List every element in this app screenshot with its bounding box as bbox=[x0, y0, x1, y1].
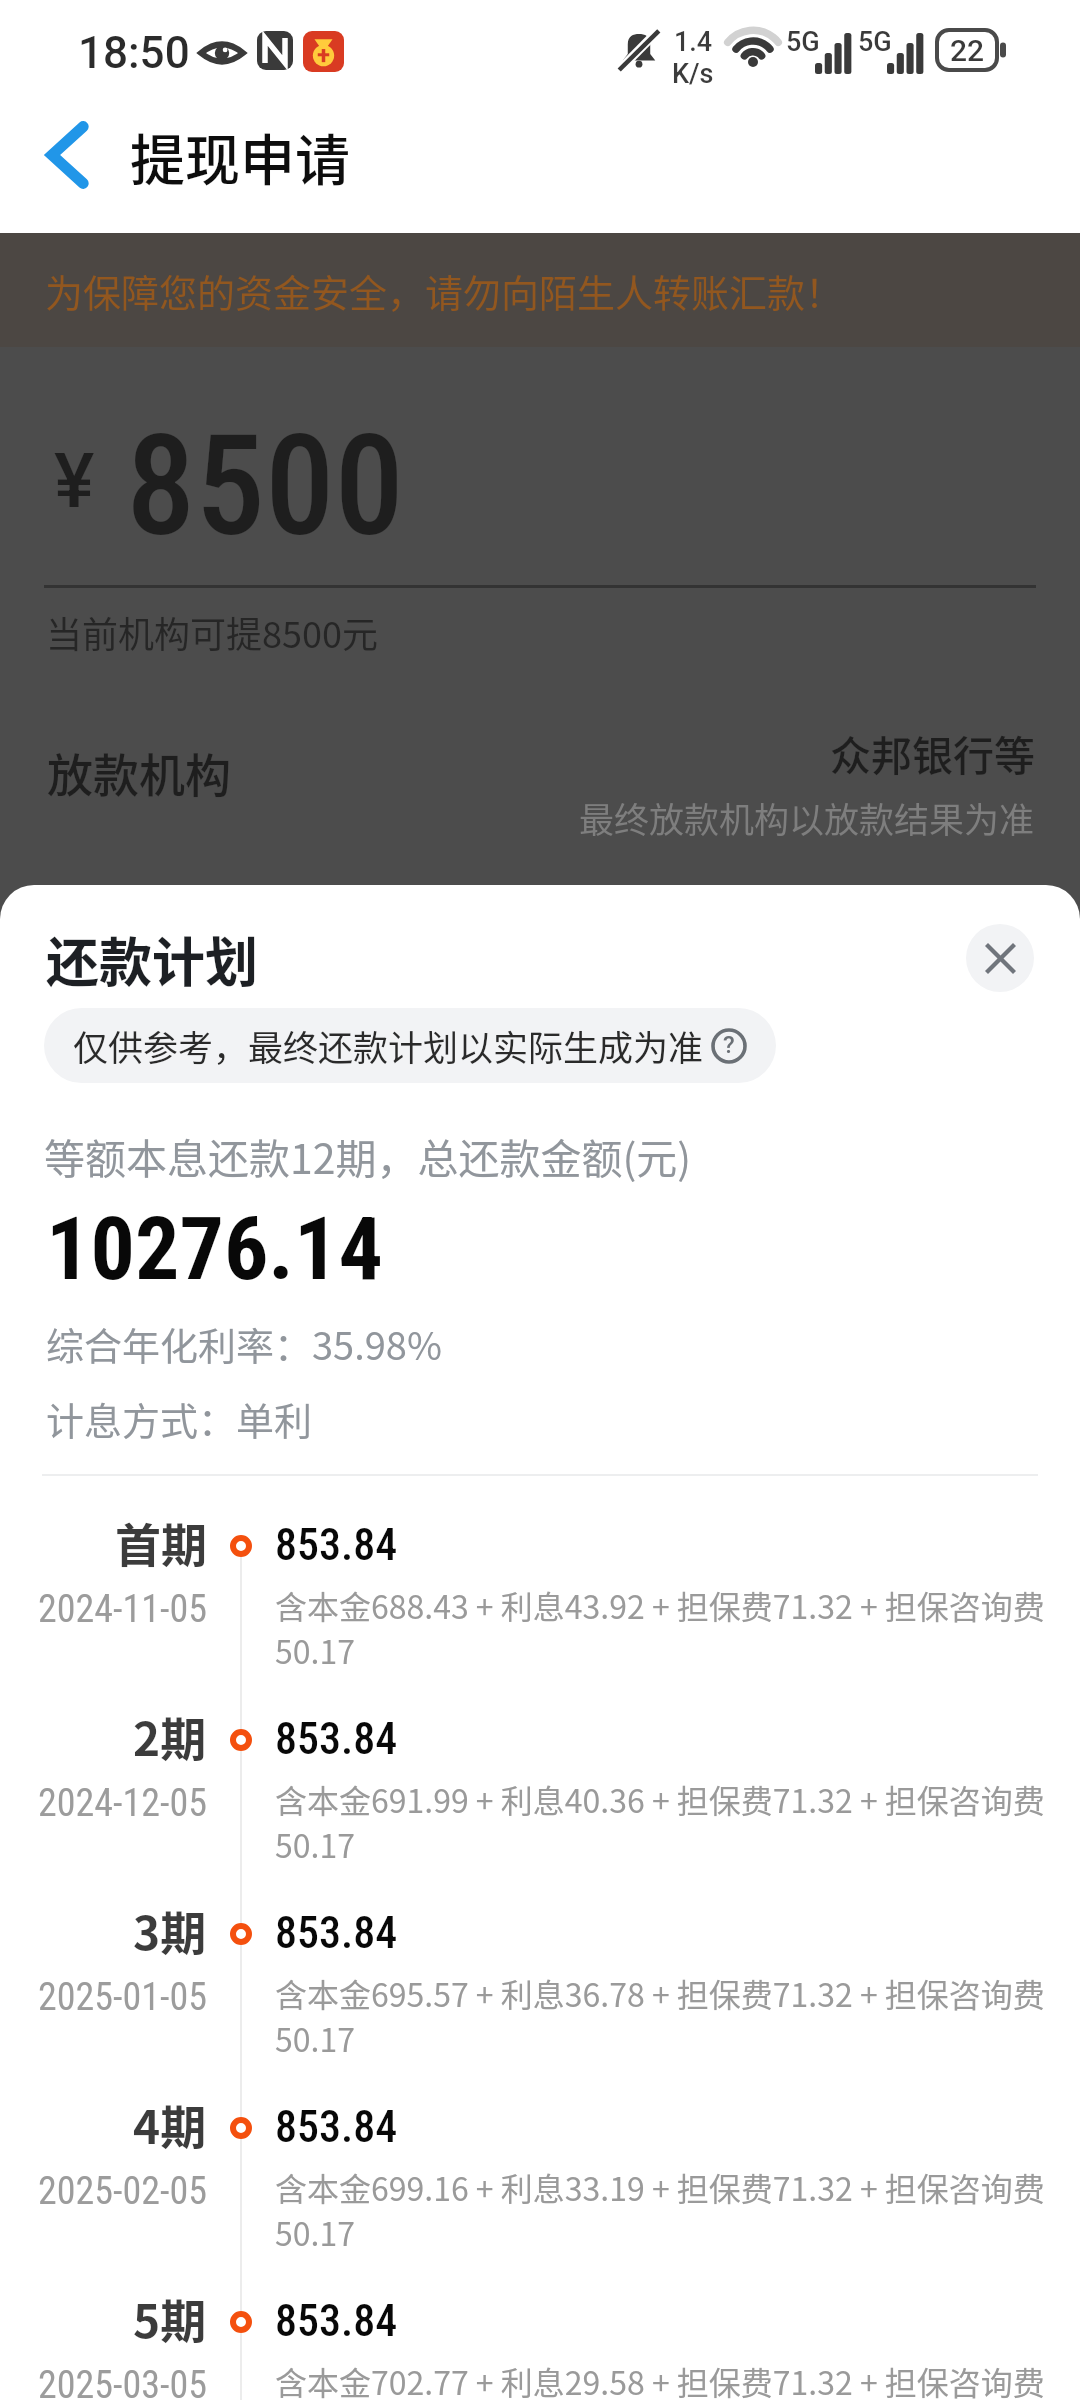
staticText: 3期 bbox=[133, 1897, 207, 1964]
staticText: 2025-03-05 bbox=[38, 2363, 207, 2400]
staticText: 5G bbox=[858, 26, 892, 58]
staticText: 计息方式：单利 bbox=[46, 1391, 313, 1446]
staticText: 含本金691.99 + 利息40.36 + 担保费71.32 + 担保咨询费50… bbox=[275, 1776, 1075, 1867]
staticText: 5期 bbox=[133, 2285, 207, 2352]
button[interactable]: Close bbox=[966, 924, 1034, 992]
staticText: 5G bbox=[786, 26, 820, 58]
staticText: 含本金699.16 + 利息33.19 + 担保费71.32 + 担保咨询费50… bbox=[275, 2164, 1075, 2255]
staticText: 22 bbox=[950, 33, 985, 68]
staticText: 首期 bbox=[115, 1509, 207, 1576]
staticText: 2025-01-05 bbox=[38, 1975, 207, 2020]
staticText: 853.84 bbox=[275, 2295, 398, 2347]
staticText: K/s bbox=[672, 58, 714, 90]
staticText: 当前机构可提8500元 bbox=[46, 606, 378, 658]
button[interactable]: 4期 bbox=[0, 2090, 1080, 2284]
staticText: 853.84 bbox=[275, 2101, 398, 2153]
staticText: 1.4 bbox=[674, 26, 713, 58]
staticText: 仅供参考，最终还款计划以实际生成为准 bbox=[73, 1020, 704, 1071]
staticText: 放款机构 bbox=[47, 739, 231, 806]
staticText: 10276.14 bbox=[46, 1197, 383, 1300]
staticText: 还款计划 bbox=[46, 921, 258, 998]
staticText: 为保障您的资金安全，请勿向陌生人转账汇款！ bbox=[45, 263, 844, 318]
staticText: 18:50 bbox=[78, 27, 190, 79]
button[interactable]: 首期 bbox=[0, 1508, 1080, 1702]
staticText: 含本金695.57 + 利息36.78 + 担保费71.32 + 担保咨询费50… bbox=[275, 1970, 1075, 2061]
staticText: 最终放款机构以放款结果为准 bbox=[579, 792, 1035, 843]
staticText: 2025-02-05 bbox=[38, 2169, 207, 2214]
staticText: 含本金688.43 + 利息43.92 + 担保费71.32 + 担保咨询费50… bbox=[275, 1582, 1075, 1673]
staticText: 8500 bbox=[126, 405, 404, 568]
staticText: ¥ bbox=[54, 436, 95, 525]
button[interactable]: 2期 bbox=[0, 1702, 1080, 1896]
staticText: 853.84 bbox=[275, 1713, 398, 1765]
staticText: 2024-11-05 bbox=[38, 1587, 207, 1632]
staticText: 众邦银行等 bbox=[830, 723, 1035, 782]
staticText: 2期 bbox=[133, 1703, 207, 1770]
staticText: 853.84 bbox=[275, 1907, 398, 1959]
button[interactable]: 5期 bbox=[0, 2284, 1080, 2400]
staticText: 综合年化利率：35.98% bbox=[46, 1316, 442, 1371]
staticText: 4期 bbox=[133, 2091, 207, 2158]
button[interactable]: 仅供参考，最终还款计划以实际生成为准 bbox=[44, 1008, 776, 1083]
staticText: ? bbox=[723, 1031, 735, 1059]
button[interactable]: Back bbox=[28, 127, 108, 207]
staticText: 含本金702.77 + 利息29.58 + 担保费71.32 + 担保咨询费50… bbox=[275, 2358, 1075, 2400]
button[interactable]: 3期 bbox=[0, 1896, 1080, 2090]
staticText: 2024-12-05 bbox=[38, 1781, 207, 1826]
staticText: 等额本息还款12期，总还款金额(元) bbox=[44, 1126, 692, 1185]
staticText: 提现申请 bbox=[130, 116, 351, 196]
staticText: 853.84 bbox=[275, 1519, 398, 1571]
